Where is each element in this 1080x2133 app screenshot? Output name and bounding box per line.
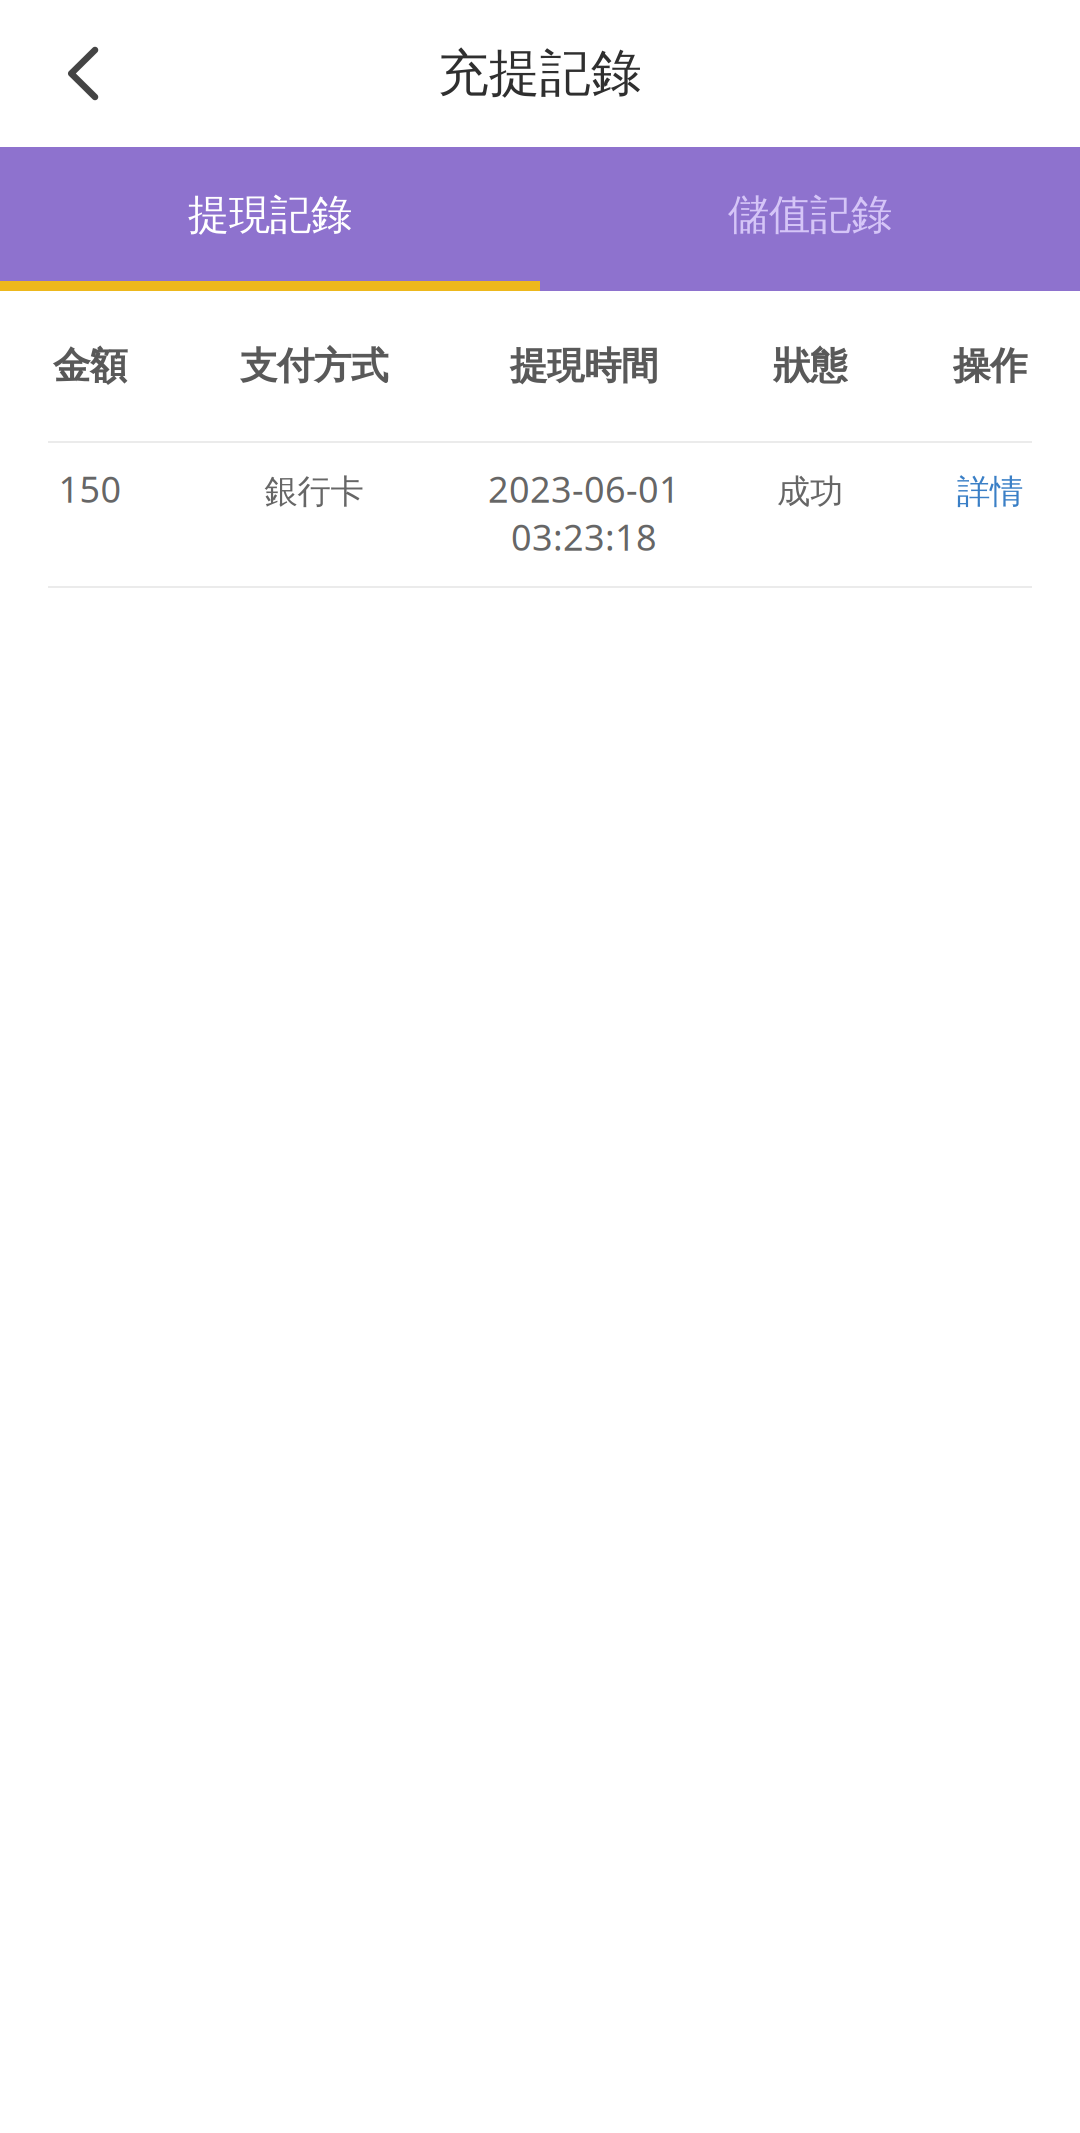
staticText: 03:23:18 (511, 513, 657, 561)
button[interactable]: 提現記錄 (0, 147, 540, 291)
staticText: 銀行卡 (264, 471, 363, 512)
staticText: 支付方式 (240, 343, 388, 389)
staticText: 成功 (777, 471, 843, 512)
staticText: 150 (58, 465, 121, 513)
button[interactable]: 儲值記錄 (540, 147, 1080, 291)
button[interactable]: 詳情 (900, 471, 1080, 531)
staticText: 充提記錄 (438, 42, 642, 105)
staticText: 狀態 (773, 343, 847, 389)
staticText: 操作 (953, 343, 1027, 389)
button[interactable]: Back (0, 0, 166, 147)
staticText: 詳情 (957, 471, 1023, 512)
staticText: 2023-06-01 (488, 465, 680, 513)
staticText: 提現記錄 (188, 190, 352, 240)
staticText: 儲值記錄 (728, 190, 892, 240)
staticText: 提現時間 (510, 343, 658, 389)
staticText: 金額 (53, 343, 127, 389)
